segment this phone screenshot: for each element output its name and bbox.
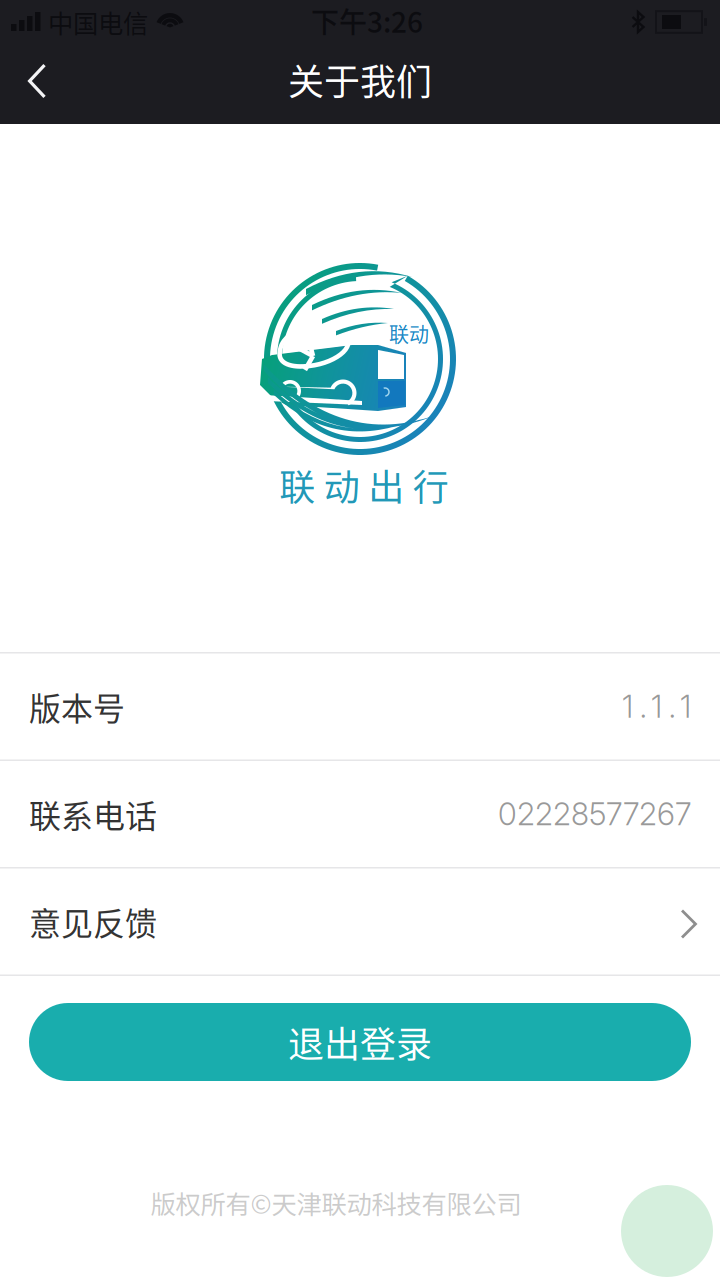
staticText: 下午3:26: [311, 0, 423, 41]
staticText: 联动: [389, 319, 429, 348]
staticText: 02228577267: [498, 795, 691, 832]
staticText: 版本号: [29, 683, 125, 730]
button[interactable]: 退出登录: [0, 976, 720, 1081]
staticText: 中国电信: [48, 4, 148, 40]
button[interactable]: 意见反馈: [0, 868, 720, 976]
button[interactable]: 联系电话: [0, 761, 720, 868]
staticText: 版权所有©天津联动科技有限公司: [150, 1184, 521, 1221]
button[interactable]: Back: [0, 44, 70, 124]
staticText: 联动出行: [279, 459, 449, 511]
staticText: 联系电话: [29, 791, 157, 837]
button[interactable]: 版本号: [0, 653, 720, 761]
staticText: 意见反馈: [29, 898, 157, 945]
staticText: 退出登录: [288, 1016, 432, 1068]
staticText: 1.1.1: [622, 688, 691, 725]
staticText: 关于我们: [288, 53, 432, 105]
